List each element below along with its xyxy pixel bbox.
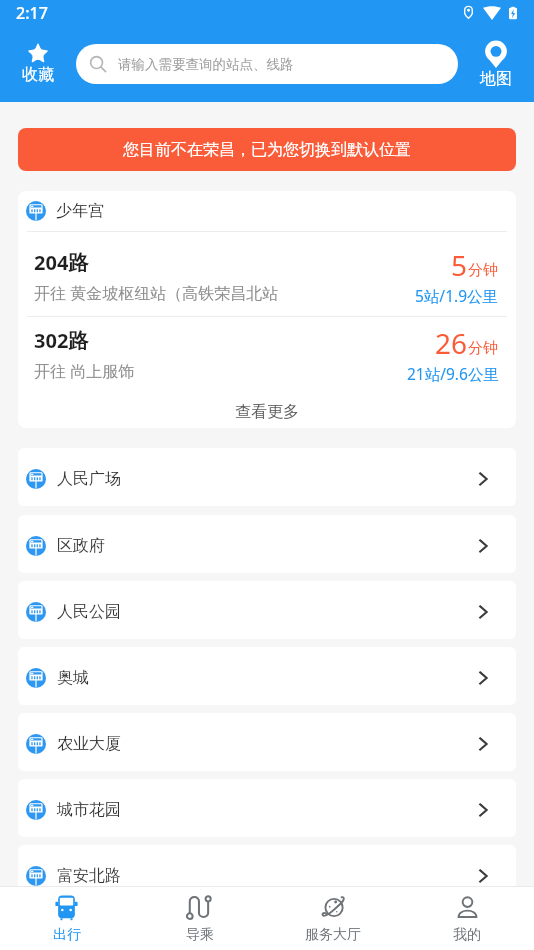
staticText: 少年宫 — [56, 201, 104, 221]
staticText: 开往 尚上服饰 — [34, 360, 135, 382]
button[interactable]: 出行 — [0, 893, 133, 944]
button[interactable]: 您目前不在荣昌，已为您切换到默认位置 — [18, 128, 516, 171]
button[interactable]: 人民公园 — [18, 581, 516, 639]
staticText: 奥城 — [57, 668, 89, 688]
staticText: 地图 — [480, 69, 512, 89]
staticText: 城市花园 — [57, 800, 121, 820]
staticText: 查看更多 — [235, 402, 299, 422]
staticText: 26 — [435, 324, 468, 362]
staticText: 导乘 — [186, 926, 214, 944]
button[interactable]: 查看更多 — [18, 395, 516, 428]
staticText: 21站/9.6公里 — [407, 363, 499, 384]
button[interactable]: 204路 — [18, 232, 516, 316]
button[interactable]: 302路 — [18, 317, 516, 395]
button[interactable]: 我的 — [400, 893, 534, 944]
button[interactable]: 导乘 — [133, 893, 266, 944]
staticText: 收藏 — [22, 65, 54, 85]
staticText: 分钟 — [468, 339, 498, 358]
staticText: 请输入需要查询的站点、线路 — [118, 56, 294, 73]
staticText: 出行 — [53, 926, 81, 944]
button[interactable]: 请输入需要查询的站点、线路 — [76, 44, 458, 84]
button[interactable]: 收藏 — [10, 42, 66, 84]
staticText: 人民公园 — [57, 602, 121, 622]
staticText: 分钟 — [468, 261, 498, 280]
staticText: 5 — [451, 246, 468, 284]
button[interactable]: 农业大厦 — [18, 713, 516, 771]
staticText: 区政府 — [57, 536, 105, 556]
button[interactable]: 地图 — [468, 42, 524, 88]
button[interactable]: 服务大厅 — [266, 893, 400, 944]
button[interactable]: 少年宫 — [18, 191, 516, 231]
staticText: 我的 — [453, 926, 481, 944]
button[interactable]: 区政府 — [18, 515, 516, 573]
button[interactable]: 城市花园 — [18, 779, 516, 837]
staticText: 2:17 — [16, 2, 48, 24]
button[interactable]: 奥城 — [18, 647, 516, 705]
staticText: 人民广场 — [57, 469, 121, 489]
button[interactable]: 富安北路 — [18, 845, 516, 903]
staticText: 富安北路 — [57, 866, 121, 886]
button[interactable]: 人民广场 — [18, 448, 516, 506]
staticText: 5站/1.9公里 — [415, 285, 499, 306]
staticText: 开往 黄金坡枢纽站（高铁荣昌北站 — [34, 282, 279, 304]
staticText: 您目前不在荣昌，已为您切换到默认位置 — [123, 140, 411, 160]
staticText: 204路 — [34, 249, 89, 276]
staticText: 302路 — [34, 327, 89, 354]
staticText: 服务大厅 — [305, 926, 361, 944]
staticText: 农业大厦 — [57, 734, 121, 754]
